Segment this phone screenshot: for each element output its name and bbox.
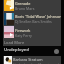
staticText: Dj Snellen Bars Smiths <box>15 19 52 24</box>
button[interactable]: Firework <box>3 26 61 38</box>
staticText: Grenade <box>15 1 31 6</box>
button[interactable]: Boris 'Tidal Wave' Johnson Stops <box>3 13 61 25</box>
staticText: Load More <box>4 40 25 45</box>
button[interactable]: Profile <box>54 49 59 54</box>
staticText: Boris 'Tidal Wave' Johnson Stops <box>15 14 61 19</box>
button[interactable]: Load More <box>3 40 61 45</box>
staticText: Bruno Mars <box>15 6 35 11</box>
staticText: Undeployed <box>4 47 29 53</box>
staticText: Undeployed on Man stopped <box>13 62 60 64</box>
staticText: Firework <box>15 28 31 33</box>
button[interactable]: Barbara Stratum <box>3 56 61 64</box>
staticText: Barbara Stratum <box>13 57 43 62</box>
staticText: Katy Perry <box>15 33 32 38</box>
button[interactable]: Grenade <box>3 0 61 11</box>
